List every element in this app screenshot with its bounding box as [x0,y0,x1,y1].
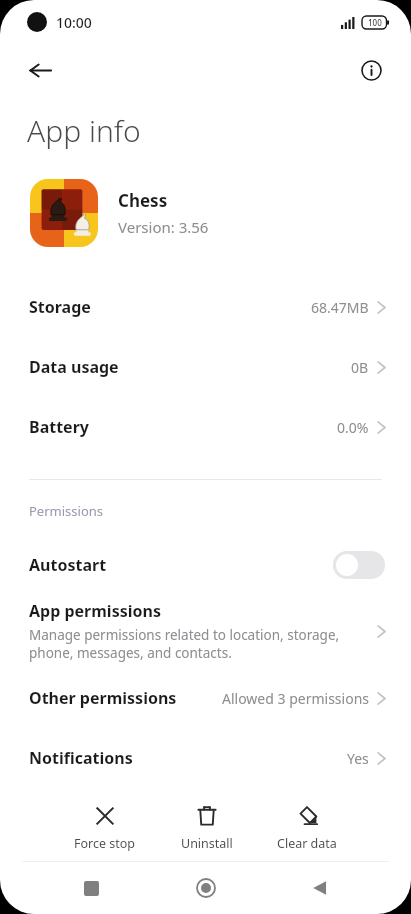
staticText: 68.47MB [311,298,369,317]
button[interactable]: Force stop [70,802,140,854]
staticText: Allowed 3 permissions [222,689,369,708]
staticText: 100 [368,17,382,28]
staticText: Notifications [29,747,133,769]
button[interactable]: Uninstall [177,802,237,854]
staticText: Storage [29,296,91,318]
staticText: Autostart [29,554,107,576]
staticText: Uninstall [181,835,233,852]
button[interactable]: App details [348,47,394,93]
staticText: Other permissions [29,687,177,709]
button[interactable]: Autostart [0,536,411,594]
staticText: Clear data [277,835,337,852]
button[interactable]: Battery [0,397,411,457]
button[interactable]: Storage [0,277,411,337]
staticText: 10:00 [56,13,92,32]
button[interactable]: Other permissions [0,668,411,728]
staticText: Battery [29,416,89,438]
button[interactable]: Data usage [0,337,411,397]
staticText: Data usage [29,356,119,378]
button[interactable]: Recent apps [67,864,115,912]
staticText: Chess [118,189,168,212]
staticText: 0.0% [337,418,369,437]
button[interactable]: Back [296,864,344,912]
button[interactable]: Clear data [273,802,341,854]
staticText: App permissions [29,600,161,622]
staticText: App info [27,110,141,151]
button[interactable]: Back [17,47,63,93]
button[interactable]: App permissions [0,594,411,668]
staticText: Permissions [29,502,104,520]
staticText: Yes [347,749,369,768]
staticText: Version: 3.56 [118,217,209,237]
staticText: Manage permissions related to location, … [29,626,351,662]
staticText: Force stop [74,835,136,852]
button[interactable]: Home [182,864,230,912]
staticText: 0B [351,358,369,377]
button[interactable]: Notifications [0,728,411,788]
